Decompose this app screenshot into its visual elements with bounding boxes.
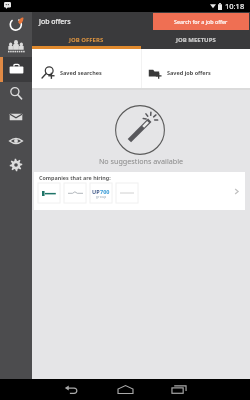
button[interactable]: Logo [8,14,25,31]
staticText: Search for a job offer [174,18,228,25]
button[interactable] [38,183,60,203]
button[interactable] [0,57,32,82]
button[interactable]: Back [53,379,89,400]
staticText: 700 [100,188,110,195]
button[interactable]: JOB OFFERS [32,31,141,49]
button[interactable]: Views [9,134,23,148]
button[interactable]: Saved job offers [141,55,250,89]
button[interactable]: People [8,37,24,53]
button[interactable]: JOB MEETUPS [141,31,250,49]
button[interactable]: Search [9,86,23,100]
button[interactable]: Saved searches [32,55,141,89]
button[interactable]: Home [107,379,143,400]
staticText: g r o u p [96,195,107,199]
button[interactable]: UP [90,183,112,203]
button[interactable] [64,183,86,203]
staticText: No suggestions available [32,156,250,166]
button[interactable]: Messages [9,110,23,124]
staticText: Saved searches [60,69,102,76]
button[interactable]: Job offers [9,62,24,77]
button[interactable]: Recents [161,379,197,400]
button[interactable]: More companies [232,187,241,196]
staticText: UP [92,188,100,195]
staticText: 10:18 [225,1,245,11]
button[interactable]: Settings [9,158,23,172]
button[interactable]: Search for a job offer [153,13,249,30]
staticText: Job offers [39,17,71,27]
other: Notification [4,2,11,9]
staticText: JOB OFFERS [69,36,104,44]
staticText: JOB MEETUPS [176,36,216,44]
staticText: Companies that are hiring: [39,174,111,181]
button[interactable] [116,183,138,203]
staticText: Saved job offers [167,69,211,76]
